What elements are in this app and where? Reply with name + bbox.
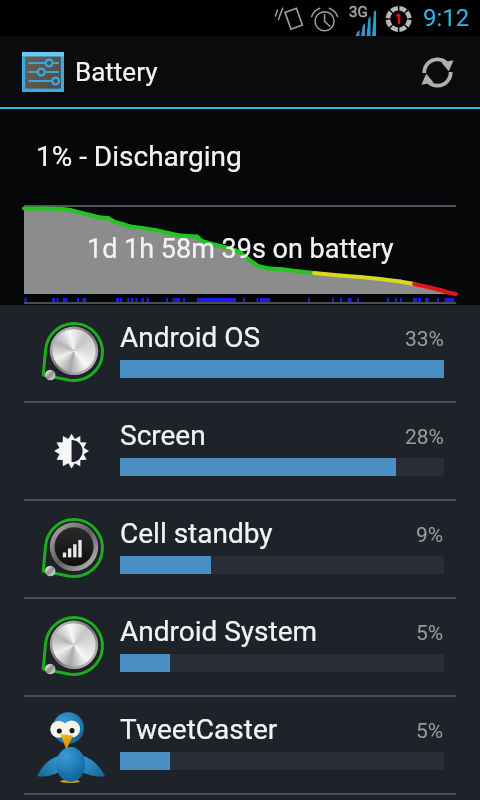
button[interactable]: Screen — [0, 403, 480, 501]
staticText: 9:12 — [423, 4, 470, 32]
button[interactable]: Android OS — [0, 305, 480, 403]
staticText: Screen — [120, 419, 206, 452]
staticText: 28% — [405, 425, 444, 450]
staticText: Android System — [120, 615, 318, 648]
staticText: 5% — [416, 621, 444, 646]
staticText: 5% — [416, 719, 444, 744]
staticText: 1% - Discharging — [36, 140, 242, 173]
staticText: Android OS — [120, 321, 261, 354]
staticText: Cell standby — [120, 517, 273, 550]
button[interactable]: Android System — [0, 599, 480, 697]
staticText: 9% — [416, 523, 444, 548]
staticText: 1d 1h 58m 39s on battery — [87, 233, 394, 265]
button[interactable]: Battery — [14, 36, 174, 107]
staticText: Battery — [75, 57, 158, 87]
staticText: 33% — [405, 327, 444, 352]
button[interactable]: Refresh — [409, 44, 465, 100]
staticText: TweetCaster — [120, 713, 278, 746]
button[interactable]: Cell standby — [0, 501, 480, 599]
button[interactable]: TweetCaster — [0, 697, 480, 795]
staticText: 3G — [349, 3, 368, 21]
